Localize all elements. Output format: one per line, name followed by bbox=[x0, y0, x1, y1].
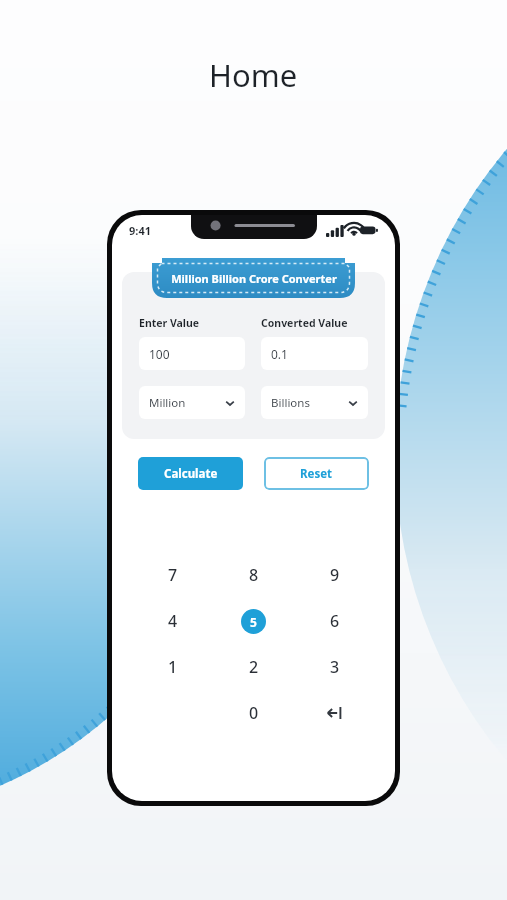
staticText: 9 bbox=[330, 564, 340, 586]
staticText: 7 bbox=[168, 564, 178, 586]
button[interactable]: 6 bbox=[294, 598, 375, 644]
button[interactable]: 7 bbox=[132, 552, 213, 598]
button[interactable]: 1 bbox=[132, 644, 213, 690]
button[interactable]: 100 bbox=[139, 337, 245, 370]
staticText: 9:41 bbox=[129, 223, 151, 238]
staticText: 8 bbox=[249, 564, 259, 586]
staticText: 100 bbox=[149, 346, 170, 362]
button[interactable]: Million bbox=[139, 386, 245, 419]
staticText: 0 bbox=[249, 702, 259, 724]
staticText: 1 bbox=[168, 656, 178, 678]
staticText: Million Billion Crore Converter bbox=[171, 271, 337, 286]
staticText: 2 bbox=[249, 656, 259, 678]
button[interactable]: 2 bbox=[213, 644, 294, 690]
button[interactable]: 9 bbox=[294, 552, 375, 598]
button[interactable]: 0.1 bbox=[261, 337, 368, 370]
staticText: 4 bbox=[168, 610, 178, 632]
staticText: Converted Value bbox=[261, 316, 348, 330]
other: Backspace bbox=[324, 702, 346, 724]
staticText: 5 bbox=[250, 614, 257, 630]
button[interactable]: 8 bbox=[213, 552, 294, 598]
staticText: Enter Value bbox=[139, 316, 200, 330]
staticText: Home bbox=[209, 54, 298, 96]
button[interactable]: 0 bbox=[213, 690, 294, 736]
staticText: Million bbox=[149, 395, 186, 411]
staticText: 6 bbox=[330, 610, 340, 632]
button[interactable]: 3 bbox=[294, 644, 375, 690]
button[interactable]: Backspace bbox=[294, 690, 375, 736]
button[interactable]: 5 bbox=[213, 598, 294, 644]
staticText: 3 bbox=[330, 656, 340, 678]
button[interactable]: Calculate bbox=[138, 457, 243, 490]
staticText: Calculate bbox=[164, 466, 218, 482]
staticText: 0.1 bbox=[271, 346, 288, 362]
staticText: Reset bbox=[300, 466, 333, 482]
button[interactable]: Reset bbox=[264, 457, 369, 490]
button[interactable]: 4 bbox=[132, 598, 213, 644]
button[interactable]: Billions bbox=[261, 386, 368, 419]
staticText: Billions bbox=[271, 395, 310, 411]
